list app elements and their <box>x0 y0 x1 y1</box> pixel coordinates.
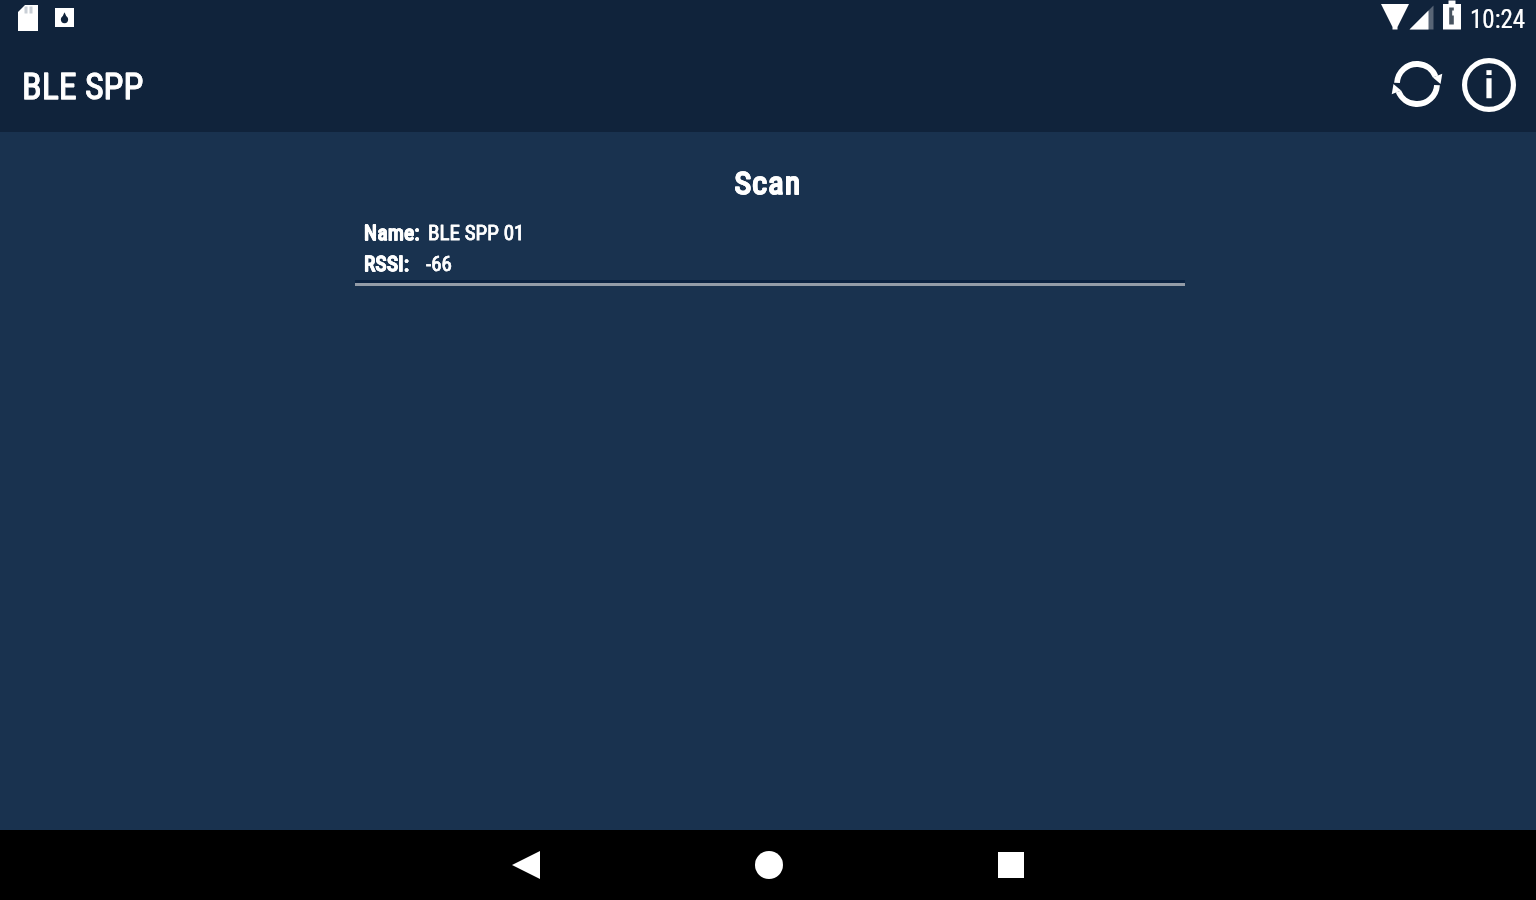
staticText: -66 <box>426 252 452 277</box>
button[interactable]: Back <box>466 830 585 900</box>
button[interactable]: Info <box>1445 41 1533 129</box>
button[interactable]: Home <box>709 830 828 900</box>
staticText: Name: <box>364 221 420 246</box>
staticText: Scan <box>0 164 1536 202</box>
staticText: -66 <box>426 252 452 277</box>
staticText: BLE SPP <box>22 66 144 108</box>
staticText: 10:24 <box>1470 5 1526 34</box>
staticText: BLE SPP 01 <box>428 221 525 246</box>
staticText: RSSI: <box>364 252 410 277</box>
staticText: Name: <box>364 221 420 246</box>
button[interactable]: Refresh <box>1373 40 1461 128</box>
staticText: RSSI: <box>364 252 410 277</box>
button[interactable]: Name: <box>355 221 1185 286</box>
button[interactable]: Recents <box>951 830 1070 900</box>
staticText: BLE SPP <box>22 66 144 108</box>
staticText: Scan <box>0 164 1536 202</box>
staticText: BLE SPP 01 <box>428 221 525 246</box>
